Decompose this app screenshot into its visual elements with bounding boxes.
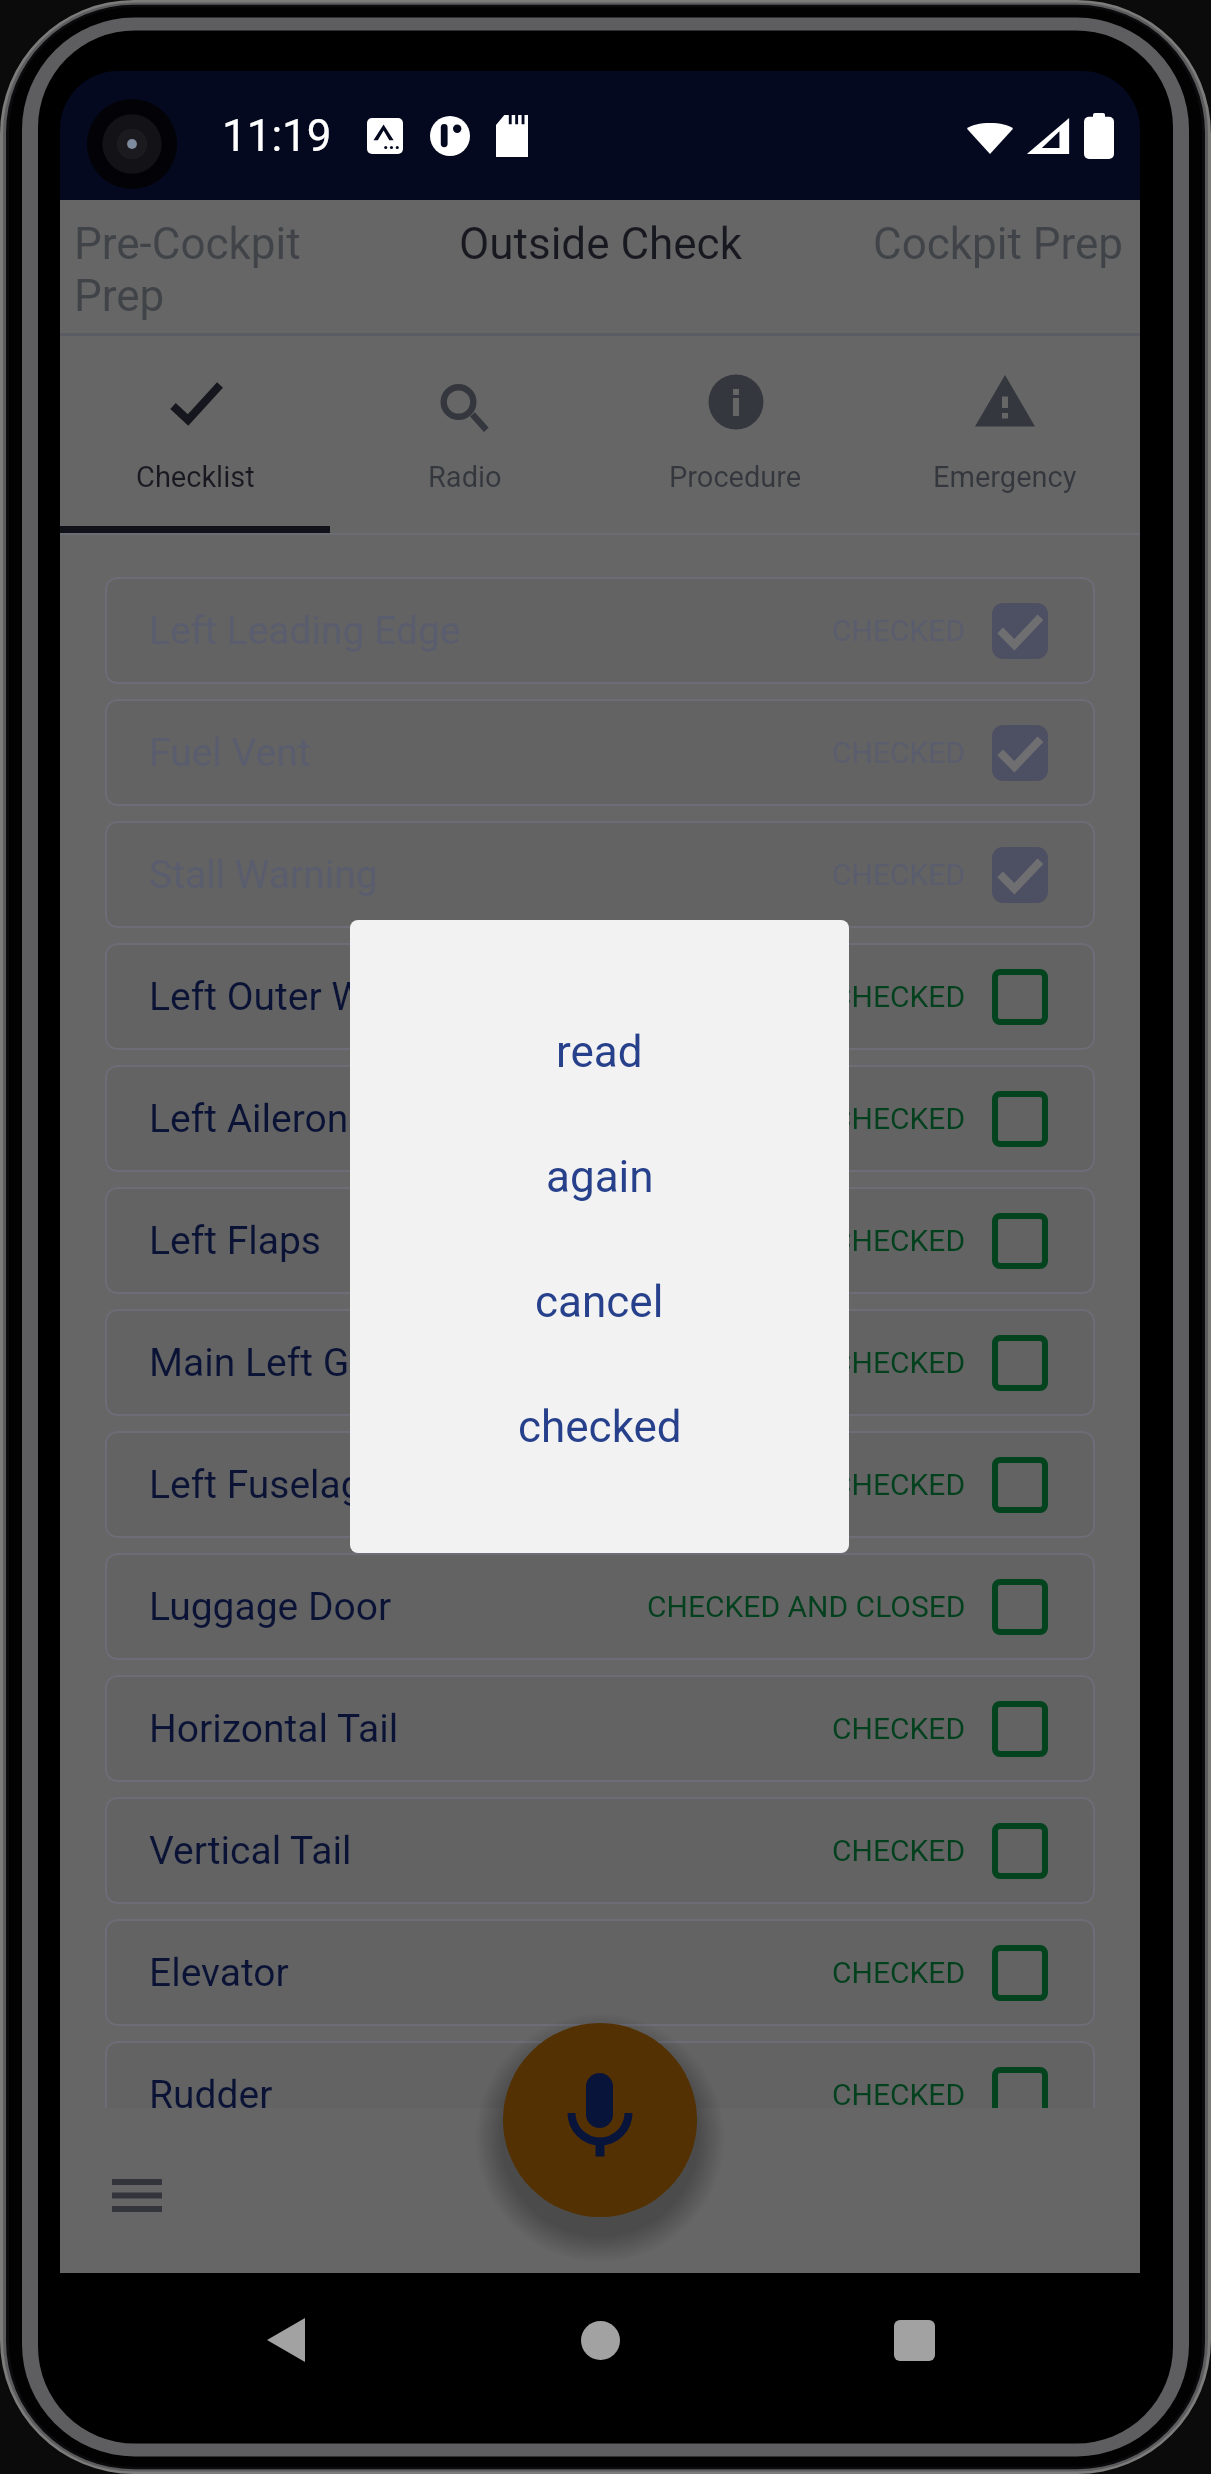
staticText: CHECKED (832, 613, 966, 648)
button[interactable]: Luggage Door (105, 1553, 1095, 1660)
staticText: CHECKED (832, 1467, 966, 1502)
button[interactable]: Emergency (870, 336, 1140, 533)
button[interactable]: read (350, 989, 849, 1114)
staticText: Left Flaps (149, 1218, 321, 1264)
staticText: CHECKED (832, 1711, 966, 1746)
staticText: CHECKED AND CLOSED (647, 1589, 966, 1624)
staticText: Procedure (669, 460, 802, 494)
button[interactable]: Menu (99, 2157, 175, 2233)
button[interactable]: Left Flaps (105, 1187, 1095, 1294)
staticText: Cockpit Prep (873, 218, 1124, 270)
staticText: again (546, 1151, 654, 1203)
button[interactable]: checked (350, 1364, 849, 1489)
staticText: Stall Warning (149, 852, 378, 898)
staticText: Fuel Vent (149, 730, 311, 776)
staticText: Left Leading Edge (149, 608, 461, 654)
staticText: cancel (535, 1276, 664, 1328)
button[interactable]: Procedure (600, 336, 870, 533)
staticText: Checklist (136, 460, 255, 494)
staticText: Luggage Door (149, 1584, 392, 1630)
button[interactable]: Left Leading Edge (105, 577, 1095, 684)
staticText: Outside Check (459, 218, 742, 270)
button[interactable]: Left Aileron (105, 1065, 1095, 1172)
button[interactable]: Stall Warning (105, 821, 1095, 928)
button[interactable]: Horizontal Tail (105, 1675, 1095, 1782)
staticText: read (556, 1026, 643, 1078)
button[interactable]: Elevator (105, 1919, 1095, 2026)
button[interactable]: Radio (330, 336, 600, 533)
staticText: CHECKED (832, 857, 966, 892)
button[interactable]: Rudder (105, 2041, 1095, 2148)
staticText: 11:19 (222, 110, 332, 162)
button[interactable]: again (350, 1114, 849, 1239)
button[interactable]: Voice command (503, 2023, 697, 2217)
button[interactable]: cancel (350, 1239, 849, 1364)
staticText: CHECKED (832, 1223, 966, 1258)
button[interactable]: Home (555, 2295, 645, 2385)
staticText: CHECKED (832, 1955, 966, 1990)
staticText: Left Fuselage (149, 1462, 384, 1508)
staticText: CHECKED (832, 979, 966, 1014)
staticText: CHECKED (832, 1345, 966, 1380)
staticText: CHECKED (832, 1833, 966, 1868)
button[interactable]: Recents (869, 2295, 959, 2385)
button[interactable]: Main Left Gear (105, 1309, 1095, 1416)
staticText: CHECKED (832, 2077, 966, 2112)
staticText: Left Aileron (149, 1096, 349, 1142)
staticText: Emergency (933, 460, 1077, 494)
button[interactable]: Vertical Tail (105, 1797, 1095, 1904)
staticText: Elevator (149, 1950, 289, 1996)
staticText: Vertical Tail (149, 1828, 352, 1874)
staticText: Radio (428, 460, 502, 494)
staticText: Left Outer Wing (149, 974, 419, 1020)
staticText: Pre-Cockpit Prep (74, 218, 324, 322)
button[interactable]: Back (241, 2295, 331, 2385)
button[interactable]: Checklist (60, 336, 330, 533)
staticText: CHECKED (832, 735, 966, 770)
button[interactable]: Left Outer Wing (105, 943, 1095, 1050)
staticText: Rudder (149, 2072, 273, 2118)
button[interactable]: Left Fuselage (105, 1431, 1095, 1538)
staticText: Horizontal Tail (149, 1706, 399, 1752)
staticText: CHECKED (832, 1101, 966, 1136)
staticText: checked (518, 1401, 682, 1453)
button[interactable]: Fuel Vent (105, 699, 1095, 806)
staticText: Main Left Gear (149, 1340, 405, 1386)
